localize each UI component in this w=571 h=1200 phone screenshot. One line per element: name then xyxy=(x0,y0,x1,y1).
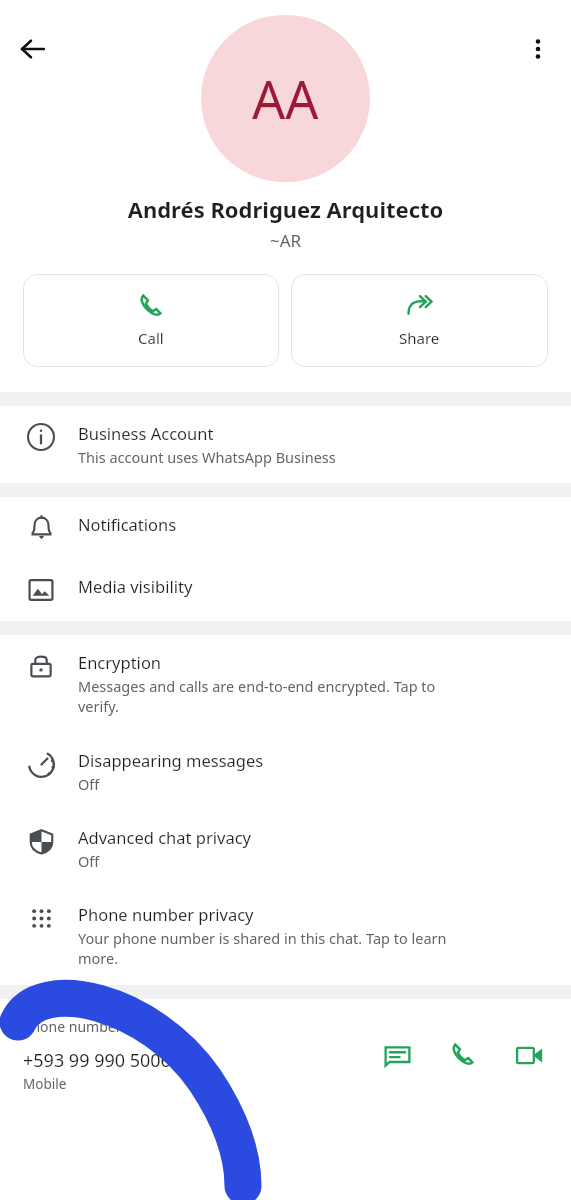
staticText: Call xyxy=(138,328,164,348)
button[interactable]: Share xyxy=(291,274,548,367)
staticText: Share xyxy=(399,328,440,348)
staticText: Your phone number is shared in this chat… xyxy=(78,928,447,969)
staticText: AA xyxy=(252,63,319,134)
staticText: Andrés Rodriguez Arquitecto xyxy=(0,194,571,224)
button[interactable]: Video call xyxy=(505,1031,553,1079)
button[interactable]: Advanced chat privacy xyxy=(0,810,571,887)
staticText: This account uses WhatsApp Business xyxy=(78,447,336,467)
button[interactable]: Phone number xyxy=(0,999,571,1107)
button[interactable]: Call xyxy=(23,274,279,367)
staticText: +593 99 990 5006 xyxy=(23,1048,171,1073)
staticText: Mobile xyxy=(23,1075,67,1093)
staticText: Business Account xyxy=(78,422,214,444)
staticText: Phone number xyxy=(23,1017,122,1036)
button[interactable]: Media visibility xyxy=(0,559,571,621)
staticText: Media visibility xyxy=(78,575,193,597)
staticText: Disappearing messages xyxy=(78,749,264,771)
button[interactable]: Notifications xyxy=(0,497,571,559)
button[interactable]: Back xyxy=(9,25,57,73)
button[interactable]: More options xyxy=(514,25,562,73)
button[interactable]: AA xyxy=(201,15,370,182)
staticText: Phone number privacy xyxy=(78,903,254,925)
button[interactable]: Message xyxy=(373,1031,421,1079)
staticText: Messages and calls are end-to-end encryp… xyxy=(78,676,436,717)
button[interactable]: Call xyxy=(439,1031,487,1079)
staticText: Notifications xyxy=(78,513,177,535)
button[interactable]: Encryption xyxy=(0,635,571,733)
button[interactable]: Phone number privacy xyxy=(0,887,571,985)
button[interactable]: Disappearing messages xyxy=(0,733,571,810)
button[interactable]: Business Account xyxy=(0,406,571,483)
staticText: Advanced chat privacy xyxy=(78,826,252,848)
staticText: Off xyxy=(78,851,100,871)
staticText: Off xyxy=(78,774,100,794)
staticText: Encryption xyxy=(78,651,162,673)
staticText: ~AR xyxy=(0,229,571,252)
